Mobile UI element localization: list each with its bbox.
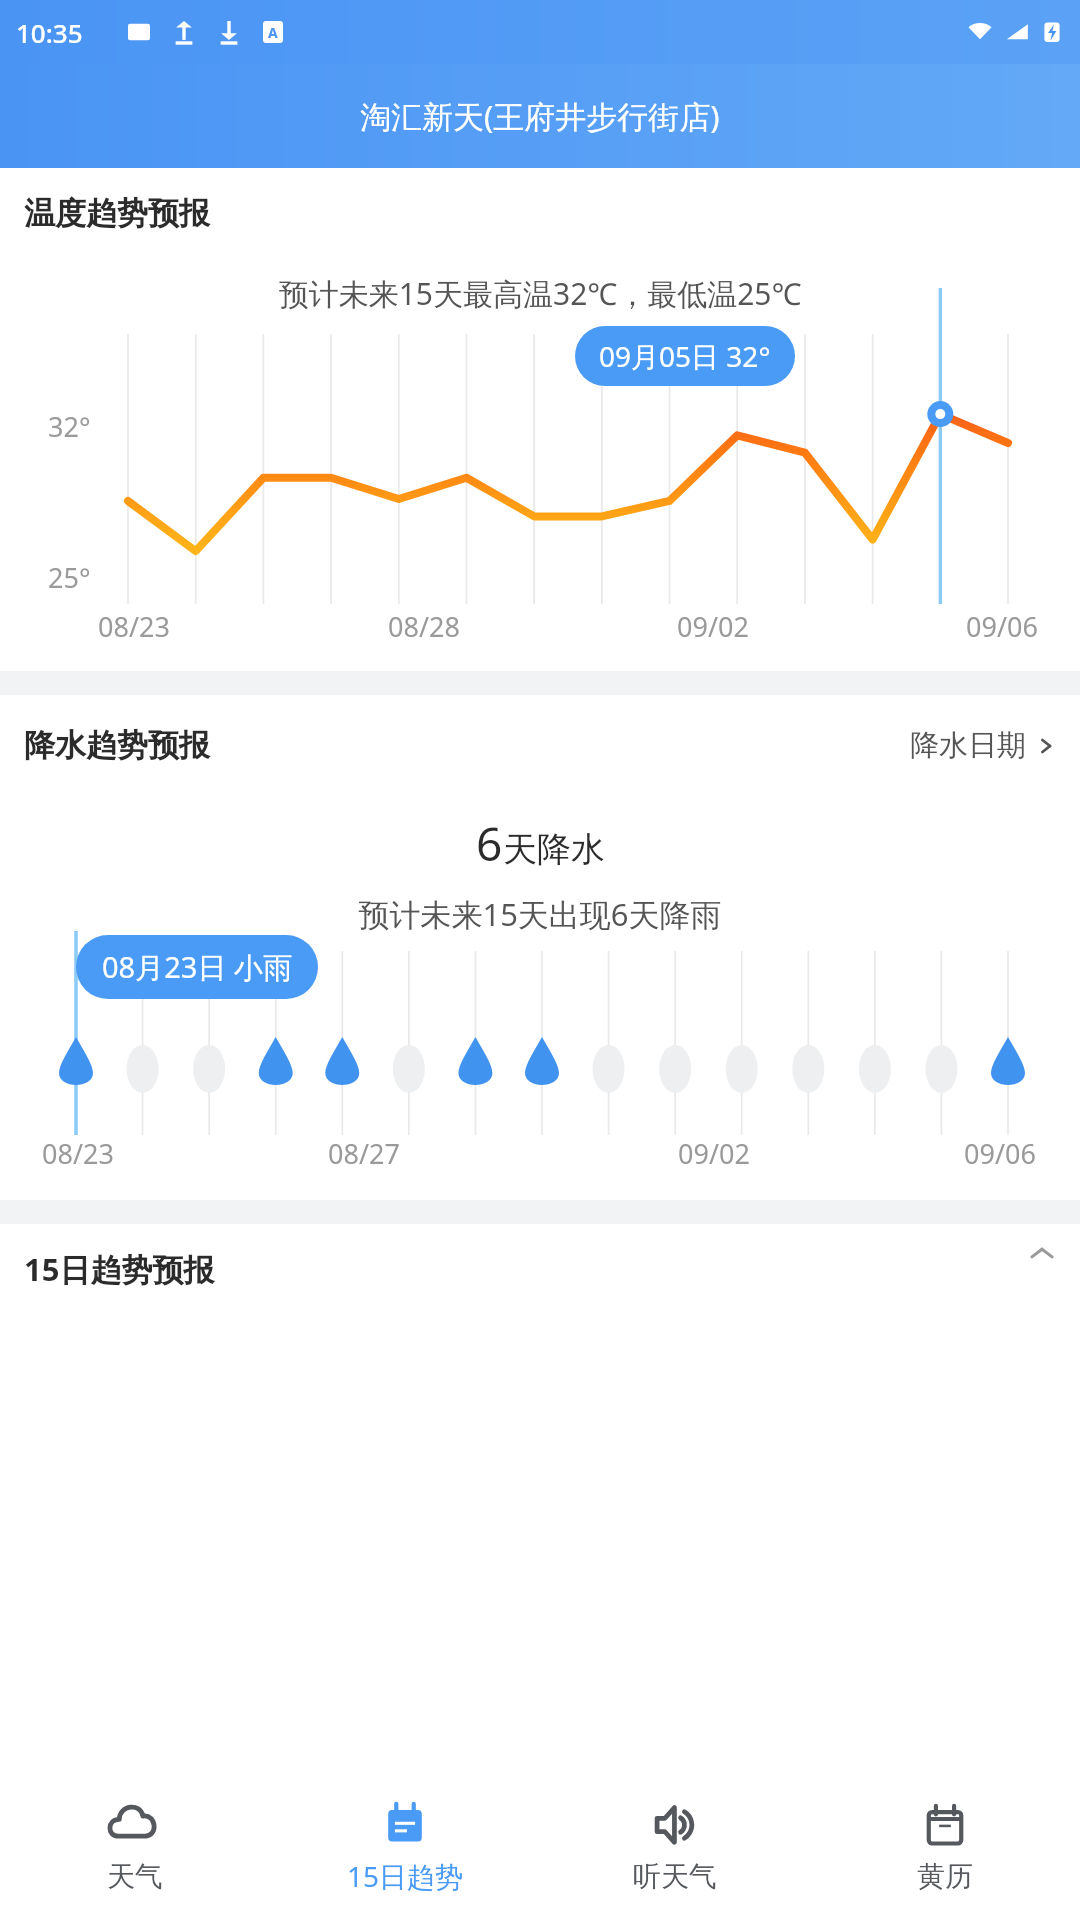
staticText: 08月23日 小雨	[102, 947, 292, 987]
staticText: 09/06	[964, 1135, 1036, 1172]
button[interactable]: 降水日期	[904, 721, 1062, 770]
staticText: 08/23	[98, 608, 170, 645]
staticText: 温度趋势预报	[24, 194, 210, 233]
staticText: 6	[476, 812, 503, 875]
staticText: 天降水	[503, 828, 605, 871]
staticText: 降水趋势预报	[24, 726, 210, 765]
staticText: 15日趋势	[347, 1857, 464, 1895]
button[interactable]: 天气	[0, 1770, 270, 1920]
button[interactable]: 08月23日 小雨	[76, 935, 318, 999]
staticText: 08/23	[42, 1135, 114, 1172]
staticText: 听天气	[633, 1859, 717, 1894]
staticText: 10:35	[16, 15, 83, 50]
staticText: 15日趋势预报	[24, 1248, 215, 1290]
button[interactable]: 听天气	[540, 1770, 810, 1920]
staticText: 降水日期	[910, 727, 1026, 764]
staticText: 预计未来15天出现6天降雨	[0, 893, 1080, 935]
staticText: 淘汇新天(王府井步行街店)	[360, 95, 720, 137]
staticText: 09/02	[678, 1135, 750, 1172]
staticText: 32°	[48, 408, 91, 445]
button[interactable]: 09月05日 32°	[575, 326, 795, 386]
staticText: 25°	[48, 559, 91, 596]
button[interactable]: 15日趋势	[270, 1770, 540, 1920]
staticText: A	[268, 23, 278, 42]
button[interactable]: 黄历	[810, 1770, 1080, 1920]
staticText: 09/06	[966, 608, 1038, 645]
staticText: 黄历	[917, 1859, 973, 1894]
staticText: 天气	[107, 1859, 163, 1894]
staticText: 预计未来15天最高温32℃，最低温25℃	[0, 273, 1080, 314]
staticText: 09/02	[677, 608, 749, 645]
staticText: 08/27	[328, 1135, 400, 1172]
staticText: 09月05日 32°	[599, 337, 771, 375]
staticText: 08/28	[388, 608, 460, 645]
